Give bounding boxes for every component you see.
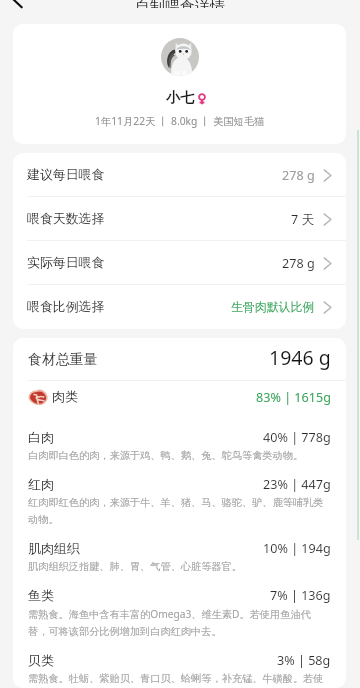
staticText: 小七 [166, 89, 194, 107]
staticText: 自制喂食详情 [135, 0, 225, 8]
staticText: 红肉 [28, 477, 54, 493]
staticText: 1946 g [269, 344, 331, 371]
button[interactable]: 喂食天数选择 [13, 197, 346, 241]
staticText: 7% | 136g [270, 587, 331, 604]
staticText: 鱼类 [28, 588, 54, 604]
staticText: 实际每日喂食 [27, 255, 105, 271]
staticText: 278 g [282, 255, 315, 272]
staticText: 肉类 [52, 389, 78, 405]
staticText: 需熟食。海鱼中含有丰富的Omega3、维生素D。若使用鱼油代替，可将该部分比例增… [28, 607, 331, 638]
staticText: 278 g [282, 167, 315, 184]
staticText: 喂食天数选择 [27, 211, 105, 227]
staticText: 40% | 778g [263, 429, 331, 446]
button[interactable]: 喂食比例选择 [13, 285, 346, 329]
staticText: 23% | 447g [263, 476, 331, 493]
staticText: 10% | 194g [263, 540, 331, 557]
staticText: 3% | 58g [277, 652, 331, 669]
staticText: 生骨肉默认比例 [231, 300, 315, 315]
button[interactable]: 建议每日喂食 [13, 153, 346, 197]
staticText: 白肉即白色的肉，来源于鸡、鸭、鹅、兔、鸵鸟等禽类动物。 [28, 449, 304, 462]
staticText: 83% | 1615g [256, 389, 331, 406]
staticText: 贝类 [28, 653, 54, 669]
staticText: 建议每日喂食 [27, 167, 105, 183]
staticText: 食材总重量 [28, 351, 98, 369]
staticText: 肌肉组织泛指腱、肺、胃、气管、心脏等器官。 [28, 560, 242, 573]
staticText: 肌肉组织 [28, 541, 80, 557]
staticText: 白肉 [28, 430, 54, 446]
staticText: 喂食比例选择 [27, 299, 105, 315]
staticText: 红肉即红色的肉，来源于牛、羊、猪、马、骆驼、驴、鹿等哺乳类动物。 [28, 496, 331, 526]
button[interactable]: 实际每日喂食 [13, 241, 346, 285]
staticText: 1年11月22天 丨 8.0kg 丨 美国短毛猫 [95, 114, 265, 128]
staticText: 需熟食。牡蛎、紫贻贝、青口贝、蛤蜊等，补充锰、牛磺酸。若使用 [28, 672, 331, 688]
staticText: 7 天 [291, 211, 315, 228]
